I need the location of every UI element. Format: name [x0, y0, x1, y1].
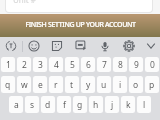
- staticText: e: [38, 79, 43, 91]
- button[interactable]: 3: [33, 57, 47, 72]
- staticText: 3: [38, 59, 43, 71]
- staticText: q: [5, 79, 11, 91]
- staticText: FINISH SETTING UP YOUR ACCOUNT: [25, 20, 136, 30]
- button[interactable]: h: [89, 96, 103, 113]
- button[interactable]: i: [113, 76, 127, 93]
- button[interactable]: q: [1, 76, 15, 93]
- staticText: 0: [150, 59, 155, 71]
- button[interactable]: Emoji: [23, 37, 45, 55]
- staticText: Unit #: [13, 0, 36, 5]
- staticText: 1: [6, 59, 11, 71]
- staticText: 6: [86, 59, 91, 71]
- button[interactable]: GIF: [69, 37, 93, 55]
- button[interactable]: l: [137, 96, 151, 113]
- button[interactable]: Collapse: [141, 37, 160, 55]
- staticText: 4: [54, 59, 59, 71]
- staticText: d: [45, 99, 51, 111]
- staticText: 8: [118, 59, 123, 71]
- staticText: u: [101, 79, 107, 91]
- button[interactable]: 8: [113, 57, 127, 72]
- button[interactable]: 6: [81, 57, 95, 72]
- button[interactable]: f: [57, 96, 71, 113]
- staticText: 7: [102, 59, 107, 71]
- button[interactable]: 5: [65, 57, 79, 72]
- button[interactable]: 4: [49, 57, 63, 72]
- staticText: k: [126, 99, 131, 111]
- staticText: i: [119, 79, 122, 91]
- staticText: t: [70, 79, 74, 91]
- staticText: y: [86, 79, 91, 91]
- button[interactable]: 9: [129, 57, 143, 72]
- button[interactable]: j: [105, 96, 119, 113]
- staticText: f: [63, 99, 66, 111]
- staticText: p: [149, 79, 155, 91]
- button[interactable]: t: [65, 76, 79, 93]
- button[interactable]: Voice input: [93, 37, 117, 55]
- staticText: r: [54, 79, 58, 91]
- button[interactable]: r: [49, 76, 63, 93]
- button[interactable]: d: [41, 96, 55, 113]
- staticText: l: [143, 99, 146, 111]
- button[interactable]: e: [33, 76, 47, 93]
- button[interactable]: o: [129, 76, 143, 93]
- staticText: 2: [22, 59, 27, 71]
- button[interactable]: u: [97, 76, 111, 93]
- staticText: h: [93, 99, 99, 111]
- button[interactable]: 0: [145, 57, 159, 72]
- staticText: a: [14, 99, 19, 111]
- button[interactable]: 7: [97, 57, 111, 72]
- staticText: 9: [134, 59, 139, 71]
- button[interactable]: Stickers: [45, 37, 69, 55]
- button[interactable]: Unit #: [6, 0, 152, 12]
- button[interactable]: k: [121, 96, 135, 113]
- button[interactable]: s: [25, 96, 39, 113]
- button[interactable]: FINISH SETTING UP YOUR ACCOUNT: [0, 14, 160, 37]
- staticText: w: [21, 79, 28, 91]
- staticText: s: [30, 99, 35, 111]
- staticText: j: [111, 99, 114, 111]
- button[interactable]: p: [145, 76, 159, 93]
- staticText: 5: [70, 59, 75, 71]
- button[interactable]: 2: [17, 57, 31, 72]
- staticText: g: [77, 99, 83, 111]
- button[interactable]: a: [9, 96, 23, 113]
- staticText: o: [133, 79, 139, 91]
- button[interactable]: y: [81, 76, 95, 93]
- button[interactable]: g: [73, 96, 87, 113]
- button[interactable]: w: [17, 76, 31, 93]
- button[interactable]: Translate: [0, 37, 22, 55]
- button[interactable]: 1: [1, 57, 15, 72]
- button[interactable]: Settings: [117, 37, 141, 55]
